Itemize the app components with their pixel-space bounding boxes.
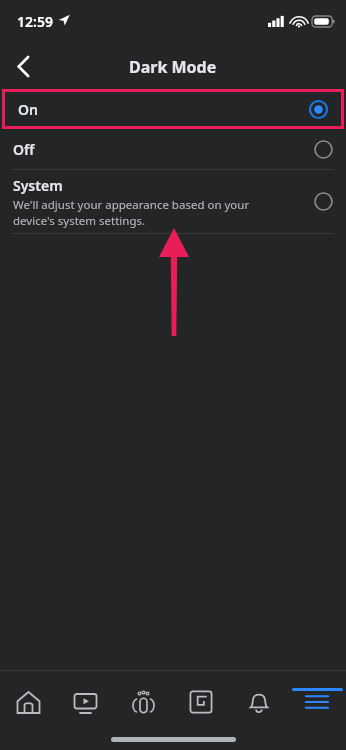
button[interactable]: Menu — [288, 670, 346, 728]
button[interactable]: Home — [0, 670, 57, 728]
button[interactable]: Video — [57, 670, 114, 728]
button[interactable]: Off — [0, 129, 346, 169]
button[interactable]: Groups — [114, 670, 172, 728]
staticText: Dark Mode — [129, 56, 217, 78]
button[interactable]: Back — [0, 44, 46, 89]
staticText: On — [18, 100, 38, 119]
staticText: We'll adjust your appearance based on yo… — [13, 197, 250, 228]
staticText: 12:59 — [17, 12, 53, 31]
button[interactable]: System — [0, 170, 346, 233]
button[interactable]: Notifications — [230, 670, 288, 728]
staticText: Off — [13, 140, 35, 159]
button[interactable]: Marketplace — [172, 670, 230, 728]
staticText: System — [13, 176, 63, 195]
button[interactable]: On — [5, 92, 341, 126]
